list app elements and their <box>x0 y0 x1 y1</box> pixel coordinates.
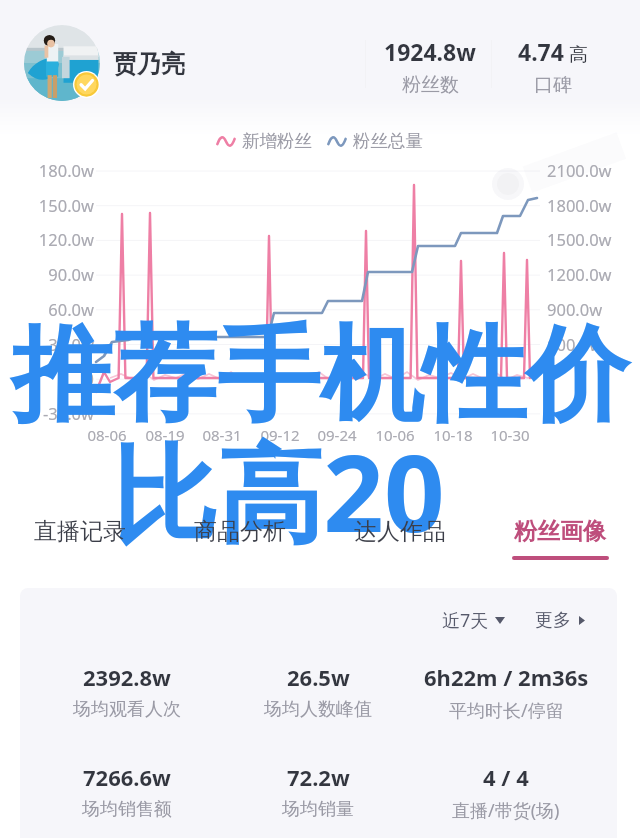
staticText: 场均销量 <box>282 798 354 821</box>
staticText: 60.0w <box>10 298 94 320</box>
staticText: 08-19 <box>135 425 195 445</box>
staticText: 7266.6w <box>83 762 171 792</box>
staticText: 10-18 <box>423 425 483 445</box>
staticText: 1200.0w <box>547 263 612 285</box>
button[interactable]: 6h22m / 2m36s <box>406 662 606 723</box>
staticText: 150.0w <box>10 194 94 216</box>
staticText: -30.0w <box>10 402 94 424</box>
staticText: 直播记录 <box>34 517 126 546</box>
staticText: 贾乃亮 <box>113 49 185 79</box>
button[interactable]: 商品分析 <box>178 508 302 566</box>
staticText: 高 <box>564 41 588 67</box>
button[interactable]: 72.2w <box>218 762 418 821</box>
button[interactable]: 1924.8w <box>376 36 484 97</box>
staticText: 72.2w <box>287 762 350 792</box>
staticText: 新增粉丝 <box>242 130 312 152</box>
staticText: 30.0w <box>10 333 94 355</box>
staticText: 09-12 <box>250 425 310 445</box>
staticText: 09-24 <box>307 425 367 445</box>
staticText: 08-31 <box>192 425 252 445</box>
staticText: 2100.0w <box>547 159 612 181</box>
staticText: 2392.8w <box>83 662 171 692</box>
staticText: 4 / 4 <box>483 762 529 792</box>
button[interactable]: 近7天 <box>438 604 509 637</box>
staticText: 1800.0w <box>547 194 612 216</box>
button[interactable]: 达人作品 <box>338 508 462 566</box>
staticText: 达人作品 <box>354 517 446 546</box>
staticText: 比高20 <box>0 419 598 564</box>
staticText: 10-30 <box>480 425 540 445</box>
staticText: 26.5w <box>287 662 350 692</box>
button[interactable]: 更多 <box>531 605 589 636</box>
staticText: 商品分析 <box>194 517 286 546</box>
staticText: 4.74 <box>518 36 564 67</box>
staticText: 直播/带货(场) <box>452 798 560 823</box>
button[interactable]: 7266.6w <box>27 762 227 821</box>
button[interactable]: 26.5w <box>218 662 418 721</box>
staticText: 600.0w <box>547 333 603 355</box>
staticText: 场均观看人次 <box>73 698 181 721</box>
button[interactable]: 粉丝画像 <box>498 508 622 566</box>
staticText: 90.0w <box>10 263 94 285</box>
staticText: 场均销售额 <box>82 798 172 821</box>
button[interactable]: 4.74 <box>498 36 608 97</box>
staticText: 900.0w <box>547 298 603 320</box>
staticText: 08-06 <box>77 425 137 445</box>
staticText: 10-06 <box>365 425 425 445</box>
button[interactable]: 4 / 4 <box>406 762 606 823</box>
staticText: 平均时长/停留 <box>449 698 564 723</box>
staticText: 180.0w <box>10 159 94 181</box>
staticText: 推荐手机性价 <box>0 311 640 441</box>
staticText: 粉丝数 <box>402 73 459 97</box>
button[interactable]: 2392.8w <box>27 662 227 721</box>
staticText: 120.0w <box>10 228 94 250</box>
staticText: 6h22m / 2m36s <box>424 662 589 692</box>
button[interactable]: 直播记录 <box>18 508 142 566</box>
staticText: 1500.0w <box>547 228 612 250</box>
staticText: 口碑 <box>534 73 572 97</box>
staticText: 粉丝总量 <box>353 130 423 152</box>
staticText: 0 <box>10 367 94 389</box>
staticText: 场均人数峰值 <box>264 698 372 721</box>
staticText: 近7天 <box>442 608 489 633</box>
staticText: 更多 <box>535 609 571 632</box>
staticText: 粉丝画像 <box>514 517 606 546</box>
staticText: 1924.8w <box>384 36 476 67</box>
